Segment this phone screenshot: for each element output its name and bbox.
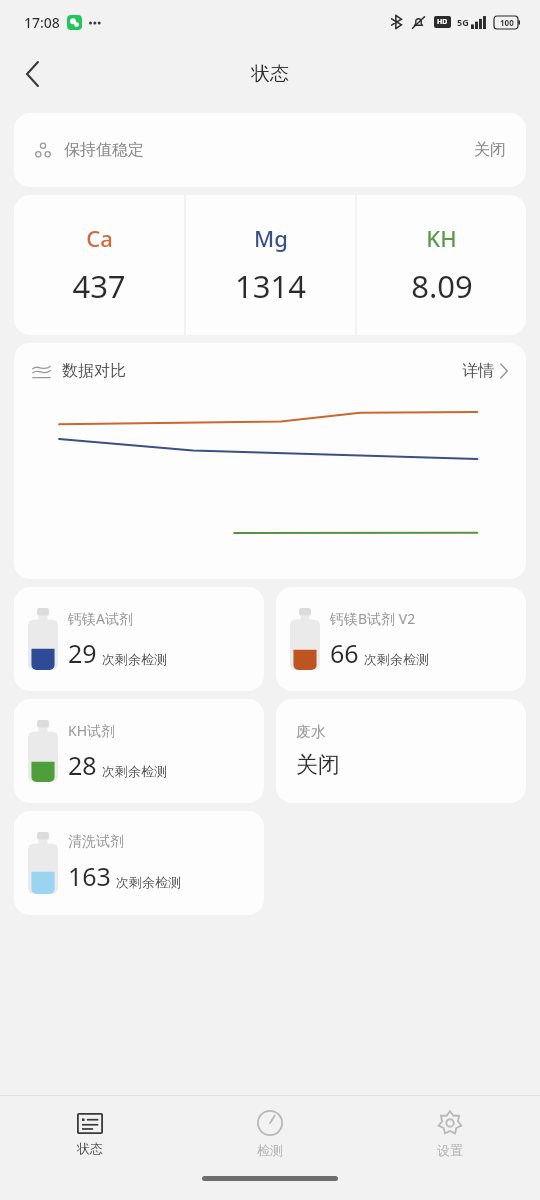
staticText: 数据对比 [62,361,126,381]
button[interactable]: KH [357,195,526,335]
staticText: 保持值稳定 [64,140,144,160]
staticText: 163 [68,859,111,893]
button[interactable]: Mg [186,195,355,335]
button[interactable]: 废水 [276,699,526,803]
button[interactable]: 设置 [360,1096,540,1172]
staticText: 5G [457,16,469,28]
staticText: 设置 [437,1142,463,1158]
staticText: 8.09 [411,265,473,307]
staticText: KH [426,223,457,253]
staticText: Mg [254,223,288,253]
staticText: 废水 [296,723,326,742]
staticText: 钙镁A试剂 [68,609,133,628]
button[interactable]: Ca [14,195,184,335]
button[interactable]: Back [8,50,56,98]
staticText: 详情 [462,361,494,381]
staticText: 状态 [77,1140,103,1156]
button[interactable]: 清洗试剂 [14,811,264,915]
button[interactable]: 状态 [0,1096,180,1172]
staticText: 次剩余检测 [102,651,167,667]
staticText: 状态 [251,62,289,86]
staticText: 66 [330,636,359,670]
staticText: 1314 [235,265,306,307]
button[interactable]: KH试剂 [14,699,264,803]
staticText: KH试剂 [68,721,116,740]
staticText: 钙镁B试剂 V2 [330,609,416,628]
staticText: 437 [72,265,126,307]
staticText: 次剩余检测 [364,651,429,667]
button[interactable]: 钙镁B试剂 V2 [276,587,526,691]
staticText: 28 [68,748,97,782]
staticText: 清洗试剂 [68,833,124,851]
button[interactable]: 钙镁A试剂 [14,587,264,691]
staticText: 关闭 [296,751,340,779]
staticText: 100 [500,17,514,28]
button[interactable]: 数据对比 [14,343,526,399]
button[interactable]: 检测 [180,1096,360,1172]
staticText: 检测 [257,1142,283,1158]
staticText: 17:08 [24,13,60,32]
staticText: HD [437,17,448,27]
staticText: 次剩余检测 [116,874,181,890]
staticText: 关闭 [474,140,506,160]
button[interactable]: 保持值稳定 [14,113,526,187]
staticText: 29 [68,636,97,670]
staticText: 次剩余检测 [102,763,167,779]
staticText: Ca [86,223,113,253]
